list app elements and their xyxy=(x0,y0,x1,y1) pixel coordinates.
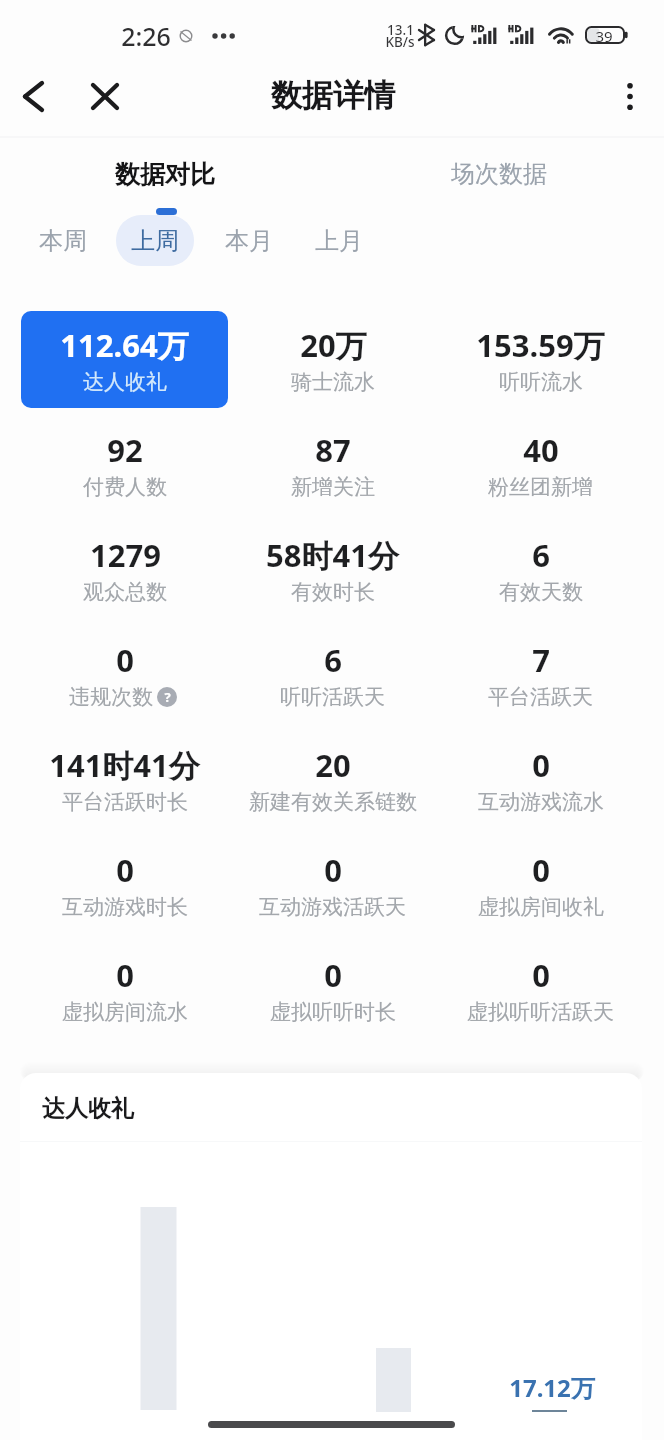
staticText: 本月 xyxy=(225,226,273,256)
staticText: 0 xyxy=(532,954,550,996)
staticText: 数据对比 xyxy=(115,159,215,190)
button[interactable]: 0 xyxy=(437,954,644,1039)
staticText: 虚拟房间流水 xyxy=(62,999,188,1025)
button[interactable]: 112.64万 xyxy=(21,311,228,408)
staticText: 有效时长 xyxy=(291,579,375,605)
button[interactable]: 0 xyxy=(21,639,228,724)
staticText: 141时41分 xyxy=(49,744,200,786)
button[interactable]: 本周 xyxy=(24,215,102,266)
button[interactable]: 上周 xyxy=(116,215,194,266)
staticText: 0 xyxy=(532,849,550,891)
button[interactable]: 7 xyxy=(437,639,644,724)
staticText: 92 xyxy=(107,429,143,471)
staticText: 新建有效关系链数 xyxy=(249,789,417,815)
button[interactable]: 0 xyxy=(437,744,644,829)
staticText: 观众总数 xyxy=(83,579,167,605)
staticText: 上周 xyxy=(131,226,179,256)
button[interactable]: 0 xyxy=(21,954,228,1039)
staticText: 互动游戏活跃天 xyxy=(259,894,406,920)
staticText: 7 xyxy=(532,639,550,681)
staticText: 20 xyxy=(315,744,351,786)
staticText: 17.12万 xyxy=(509,1371,595,1404)
staticText: 新增关注 xyxy=(291,474,375,500)
staticText: 153.59万 xyxy=(476,324,605,366)
button[interactable]: 141时41分 xyxy=(21,744,228,829)
button[interactable]: 92 xyxy=(21,429,228,514)
staticText: 互动游戏流水 xyxy=(478,789,604,815)
staticText: 听听活跃天 xyxy=(280,684,385,710)
staticText: 违规次数 xyxy=(69,684,153,710)
button[interactable]: 40 xyxy=(437,429,644,514)
button[interactable]: Back xyxy=(10,73,56,119)
staticText: 虚拟房间收礼 xyxy=(478,894,604,920)
staticText: 上月 xyxy=(315,226,363,256)
staticText: 0 xyxy=(324,954,342,996)
staticText: 2:26 xyxy=(121,19,171,53)
button[interactable]: Close xyxy=(82,73,128,119)
staticText: 有效天数 xyxy=(499,579,583,605)
button[interactable]: 1279 xyxy=(21,534,228,619)
button[interactable]: 20 xyxy=(229,744,436,829)
button[interactable]: 0 xyxy=(229,849,436,934)
button[interactable]: 0 xyxy=(21,849,228,934)
button[interactable]: 0 xyxy=(229,954,436,1039)
staticText: 骑士流水 xyxy=(291,369,375,395)
staticText: 数据详情 xyxy=(271,76,395,115)
staticText: 互动游戏时长 xyxy=(62,894,188,920)
staticText: 6 xyxy=(324,639,342,681)
staticText: 0 xyxy=(324,849,342,891)
staticText: 39 xyxy=(595,26,613,44)
button[interactable]: 数据对比 xyxy=(113,153,217,195)
staticText: 听听流水 xyxy=(499,369,583,395)
button[interactable]: 6 xyxy=(437,534,644,619)
staticText: 112.64万 xyxy=(60,324,189,366)
staticText: 0 xyxy=(116,639,134,681)
staticText: 平台活跃天 xyxy=(488,684,593,710)
staticText: 达人收礼 xyxy=(83,369,167,395)
staticText: 13.1 xyxy=(387,21,414,39)
staticText: 1279 xyxy=(90,534,161,576)
staticText: 0 xyxy=(116,954,134,996)
staticText: ? xyxy=(164,688,171,706)
staticText: 0 xyxy=(116,849,134,891)
staticText: 0 xyxy=(532,744,550,786)
button[interactable]: 上月 xyxy=(300,215,378,266)
button[interactable]: 87 xyxy=(229,429,436,514)
button[interactable]: 6 xyxy=(229,639,436,724)
staticText: 付费人数 xyxy=(83,474,167,500)
staticText: 20万 xyxy=(300,324,367,366)
button[interactable]: More options xyxy=(607,73,653,119)
staticText: 虚拟听听时长 xyxy=(270,999,396,1025)
staticText: 虚拟听听活跃天 xyxy=(467,999,614,1025)
button[interactable]: 153.59万 xyxy=(437,324,644,409)
button[interactable]: 20万 xyxy=(229,324,436,409)
staticText: 40 xyxy=(523,429,559,471)
staticText: 87 xyxy=(315,429,351,471)
button[interactable]: 场次数据 xyxy=(447,153,551,195)
staticText: 达人收礼 xyxy=(42,1094,134,1123)
staticText: 58时41分 xyxy=(266,534,399,576)
button[interactable]: 0 xyxy=(437,849,644,934)
staticText: 平台活跃时长 xyxy=(62,789,188,815)
button[interactable]: 58时41分 xyxy=(229,534,436,619)
button[interactable]: 本月 xyxy=(210,215,288,266)
staticText: 场次数据 xyxy=(451,159,547,189)
staticText: 本周 xyxy=(39,226,87,256)
staticText: KB/s xyxy=(385,33,415,51)
staticText: 粉丝团新增 xyxy=(488,474,593,500)
staticText: 6 xyxy=(532,534,550,576)
